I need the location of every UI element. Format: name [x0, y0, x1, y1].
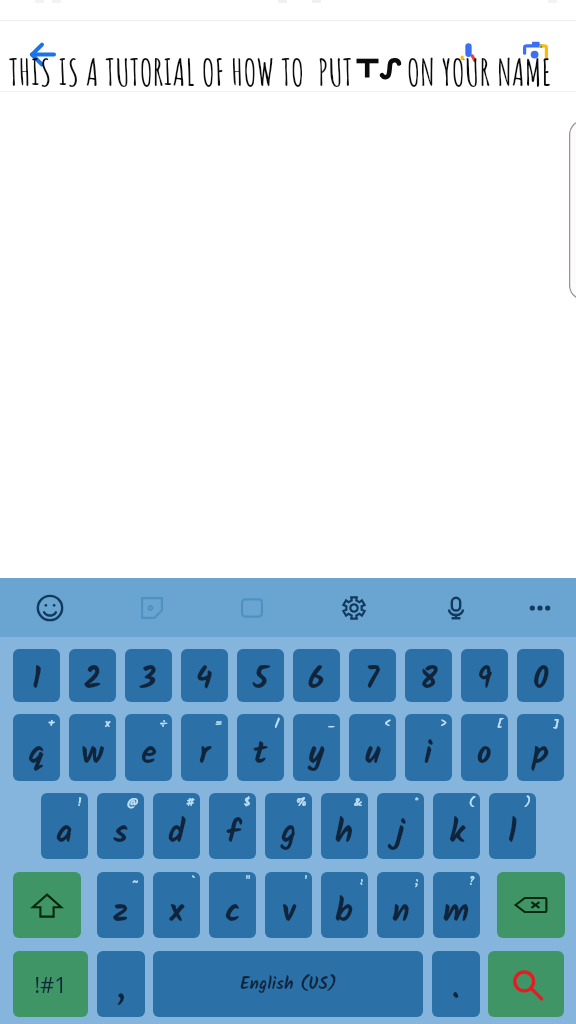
staticText: %	[296, 794, 307, 812]
button[interactable]: Settings	[338, 592, 370, 624]
staticText: g	[281, 808, 297, 859]
button[interactable]: Back	[22, 38, 58, 74]
staticText: <	[385, 715, 391, 733]
staticText: 8	[420, 656, 438, 702]
button[interactable]: ]	[517, 714, 564, 781]
staticText: "	[245, 873, 251, 891]
staticText: !#1	[34, 969, 67, 999]
staticText: 0	[533, 656, 549, 702]
button[interactable]: 0	[517, 649, 564, 702]
staticText: i	[424, 729, 433, 780]
button[interactable]: Google Lens	[523, 41, 548, 59]
button[interactable]: ÷	[125, 714, 172, 781]
button[interactable]: :	[321, 872, 368, 938]
button[interactable]: Voice input	[440, 592, 472, 624]
button[interactable]: ~	[97, 872, 144, 938]
button[interactable]: &	[321, 793, 368, 859]
button[interactable]: ,	[97, 951, 145, 1017]
staticText: 1	[32, 656, 42, 702]
button[interactable]: Shift	[13, 872, 81, 938]
staticText: a	[56, 808, 73, 859]
button[interactable]: >	[405, 714, 452, 781]
staticText: ,	[117, 964, 126, 1015]
staticText: $	[244, 794, 251, 812]
button[interactable]: 7	[349, 649, 396, 702]
staticText: b	[335, 887, 354, 938]
staticText: *	[414, 794, 419, 812]
staticText: ]	[553, 715, 559, 733]
button[interactable]: English (US)	[153, 951, 423, 1017]
button[interactable]: More options	[524, 592, 556, 624]
button[interactable]: %	[265, 793, 312, 859]
button[interactable]: Search	[488, 951, 564, 1017]
button[interactable]: ;	[377, 872, 424, 938]
staticText: k	[449, 808, 465, 859]
button[interactable]: Backspace	[497, 872, 565, 938]
staticText: x	[105, 715, 111, 733]
button[interactable]: [	[461, 714, 508, 781]
staticText: h	[335, 808, 354, 859]
staticText: )	[525, 794, 531, 812]
button[interactable]	[569, 120, 576, 300]
button[interactable]: `	[153, 872, 200, 938]
staticText: ~	[132, 873, 139, 891]
staticText: d	[168, 808, 186, 859]
staticText: 2	[84, 656, 102, 702]
staticText: =	[215, 715, 223, 733]
button[interactable]: Emoji	[34, 592, 66, 624]
staticText: :	[360, 873, 363, 891]
staticText: v	[282, 887, 296, 938]
staticText: ;	[415, 873, 419, 891]
staticText: THIS IS A TUTORIAL OF HOW TO PUT	[9, 49, 353, 95]
staticText: 5	[253, 656, 269, 702]
button[interactable]: x	[69, 714, 116, 781]
staticText: l	[508, 808, 517, 859]
button[interactable]: Voice search	[457, 38, 480, 63]
button[interactable]: 9	[461, 649, 508, 702]
button[interactable]: +	[13, 714, 60, 781]
button[interactable]: 4	[181, 649, 228, 702]
button[interactable]: 6	[293, 649, 340, 702]
staticText: r	[199, 729, 211, 780]
button[interactable]: @	[97, 793, 144, 859]
button[interactable]: "	[209, 872, 256, 938]
staticText: s	[113, 808, 128, 859]
button[interactable]: 5	[237, 649, 284, 702]
button[interactable]: '	[265, 872, 312, 938]
button[interactable]: _	[293, 714, 340, 781]
button[interactable]: <	[349, 714, 396, 781]
staticText: c	[225, 887, 241, 938]
staticText: _	[328, 715, 335, 733]
staticText: t	[253, 729, 268, 780]
button[interactable]: )	[489, 793, 536, 859]
button[interactable]: (	[433, 793, 480, 859]
button[interactable]: Stickers	[136, 592, 168, 624]
staticText: 3	[140, 656, 157, 702]
button[interactable]: /	[237, 714, 284, 781]
button[interactable]: *	[377, 793, 424, 859]
button[interactable]: 2	[69, 649, 116, 702]
button[interactable]: $	[209, 793, 256, 859]
staticText: `	[192, 873, 195, 891]
button[interactable]: 1	[13, 649, 60, 702]
button[interactable]: =	[181, 714, 228, 781]
staticText: 7	[365, 656, 380, 702]
button[interactable]: !#1	[13, 951, 88, 1017]
staticText: n	[392, 887, 410, 938]
staticText: y	[308, 729, 325, 780]
staticText: u	[365, 729, 381, 780]
staticText: '	[304, 873, 307, 891]
button[interactable]: 8	[405, 649, 452, 702]
button[interactable]: ?	[433, 872, 480, 938]
button[interactable]: !	[41, 793, 88, 859]
staticText: j	[396, 808, 405, 859]
staticText: [	[497, 715, 503, 733]
staticText: 9	[477, 656, 493, 702]
staticText: #	[186, 794, 195, 812]
button[interactable]: .	[432, 951, 480, 1017]
button[interactable]: GIF	[236, 592, 268, 624]
staticText: 4	[196, 656, 213, 702]
staticText: @	[127, 794, 139, 812]
button[interactable]: #	[153, 793, 200, 859]
button[interactable]: 3	[125, 649, 172, 702]
